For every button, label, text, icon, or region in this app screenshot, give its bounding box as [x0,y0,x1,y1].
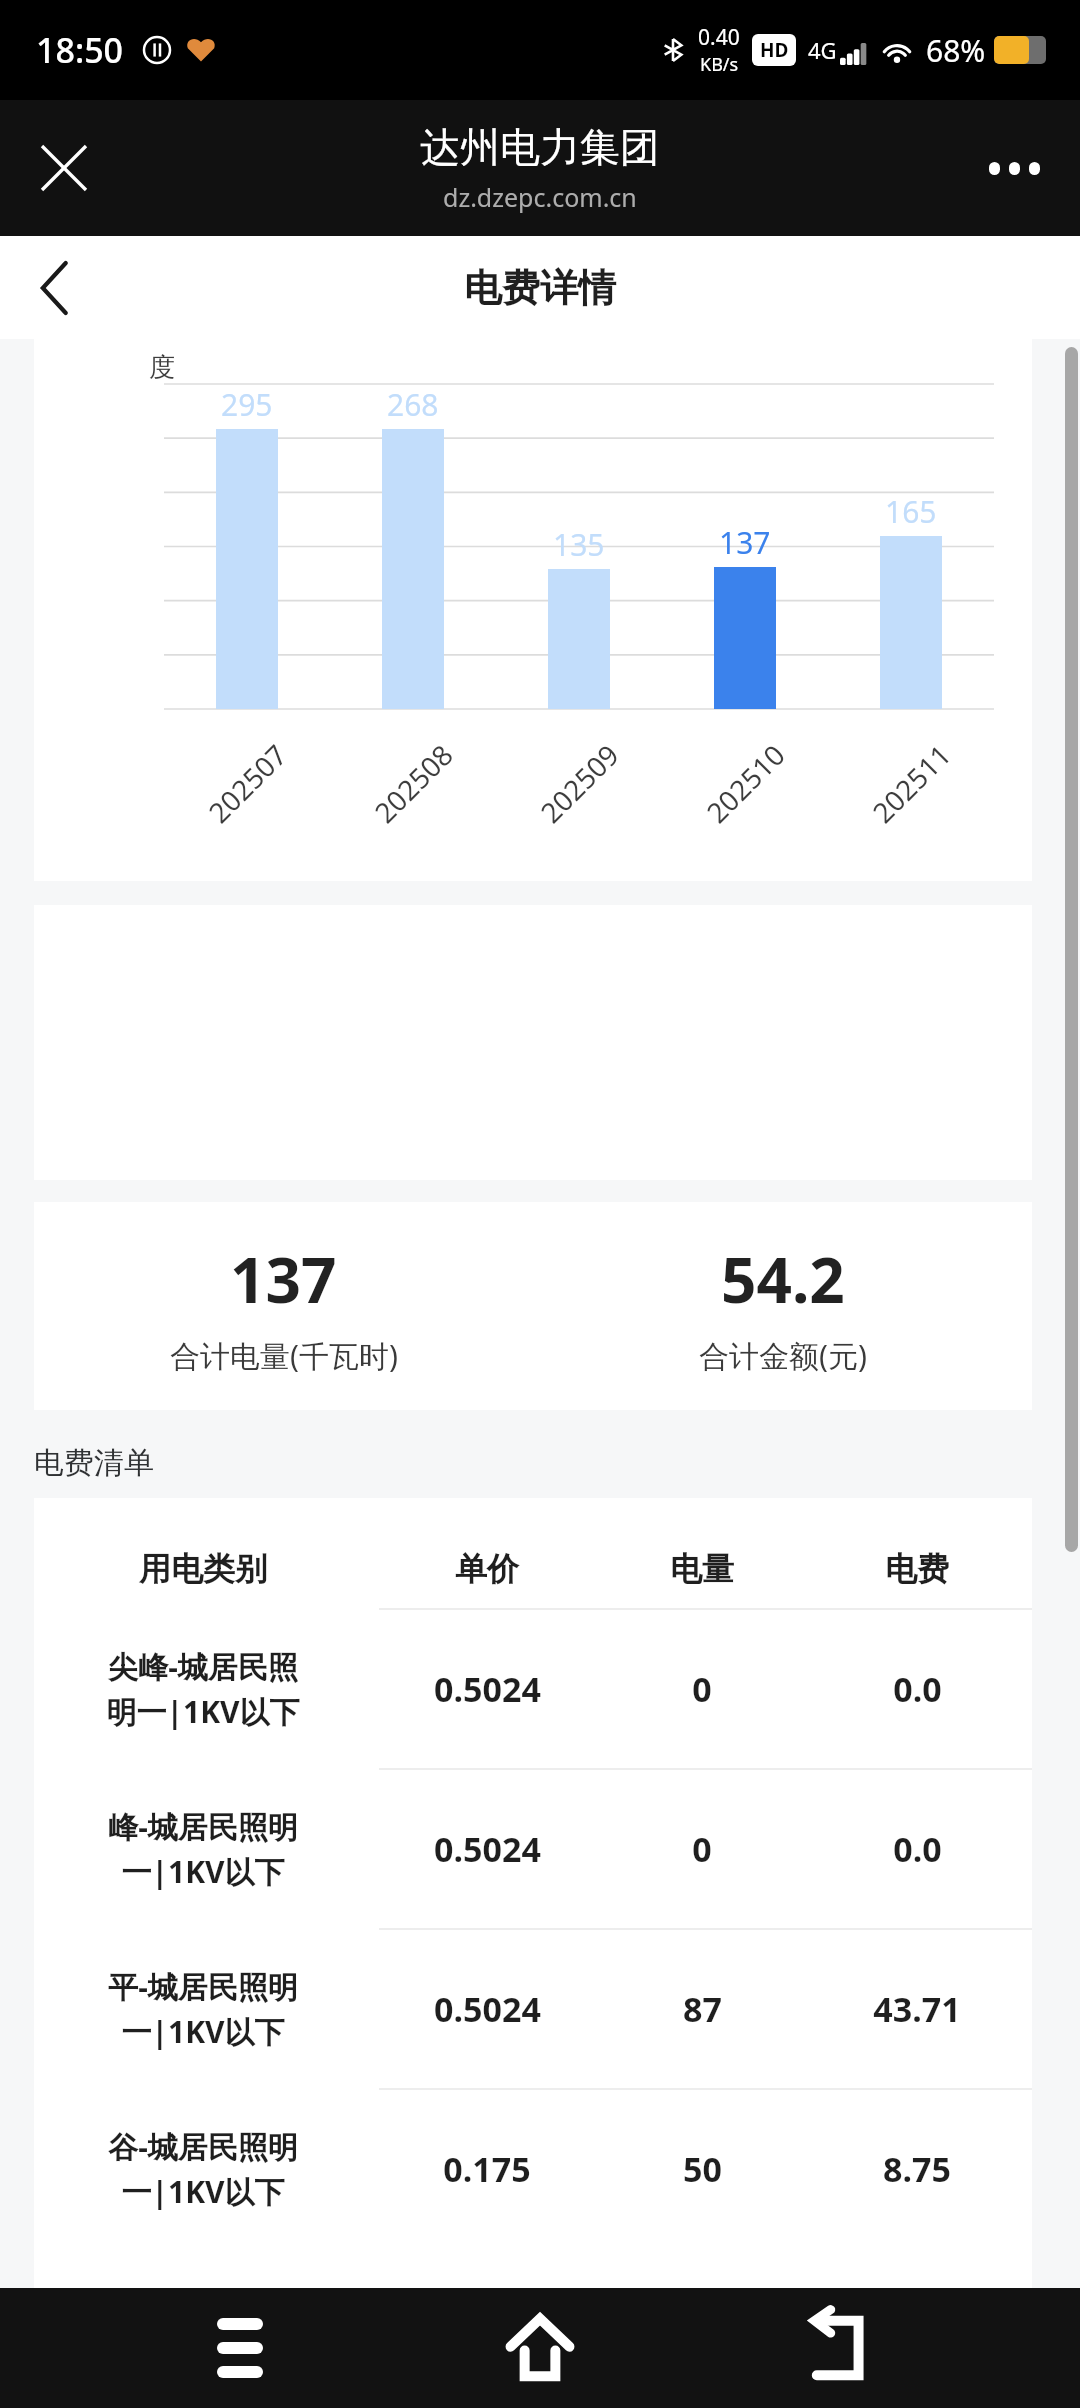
button[interactable]: Home [480,2288,600,2408]
staticText: KB/s [700,52,739,77]
staticText: 202508 [366,735,461,831]
staticText: 68% [926,30,986,71]
staticText: 202507 [200,735,295,831]
button[interactable]: 尖峰-城居民照 明一|1KV以下 [34,1610,1032,1768]
staticText: 50 [683,2146,722,2192]
staticText: 202510 [698,735,793,831]
staticText: 135 [553,524,605,565]
staticText: 用电类别 [139,1549,267,1589]
button[interactable]: Back [12,246,96,330]
staticText: 电费 [885,1549,949,1589]
staticText: 202509 [532,735,627,831]
staticText: 单价 [455,1549,519,1589]
button[interactable]: More options [970,124,1058,212]
button[interactable]: 谷-城居民照明 一|1KV以下 [34,2090,1032,2248]
button[interactable]: 54.2 [533,1237,1032,1376]
staticText: 0 [692,1666,712,1712]
button[interactable]: 平-城居民照明 一|1KV以下 [34,1930,1032,2088]
button[interactable]: Back [780,2288,900,2408]
staticText: dz.dzepc.com.cn [443,180,637,214]
staticText: 电费清单 [34,1444,154,1482]
staticText: 87 [683,1986,722,2032]
button[interactable]: Close [20,124,108,212]
staticText: 295 [221,384,273,425]
staticText: 0.40 [698,23,740,52]
staticText: 4G [808,35,837,65]
staticText: 54.2 [721,1237,845,1321]
staticText: HD [760,37,789,63]
staticText: 合计电量(千瓦时) [170,1335,398,1376]
staticText: 202511 [864,735,959,831]
staticText: 电费详情 [464,264,616,312]
staticText: 峰-城居民照明 一|1KV以下 [108,1806,298,1892]
staticText: 0 [692,1826,712,1872]
staticText: 137 [230,1237,337,1321]
staticText: 达州电力集团 [420,122,660,172]
staticText: 0.0 [893,1666,942,1712]
staticText: 谷-城居民照明 一|1KV以下 [108,2126,298,2212]
staticText: 165 [885,491,937,532]
staticText: 合计金额(元) [699,1335,867,1376]
staticText: 8.75 [883,2146,951,2192]
staticText: 0.175 [443,2146,531,2192]
staticText: 平-城居民照明 一|1KV以下 [108,1966,298,2052]
button[interactable]: Recent apps [180,2288,300,2408]
staticText: 0.5024 [434,1666,541,1712]
staticText: 电量 [670,1549,734,1589]
button[interactable]: 137 [34,1237,533,1376]
staticText: 度 [149,351,175,384]
staticText: 0.5024 [434,1986,541,2032]
button[interactable]: 峰-城居民照明 一|1KV以下 [34,1770,1032,1928]
staticText: 0.0 [893,1826,942,1872]
staticText: 18:50 [36,27,124,73]
staticText: 268 [387,384,439,425]
staticText: 43.71 [873,1986,961,2032]
staticText: 0.5024 [434,1826,541,1872]
staticText: 尖峰-城居民照 明一|1KV以下 [106,1646,300,1732]
staticText: 137 [719,522,771,563]
